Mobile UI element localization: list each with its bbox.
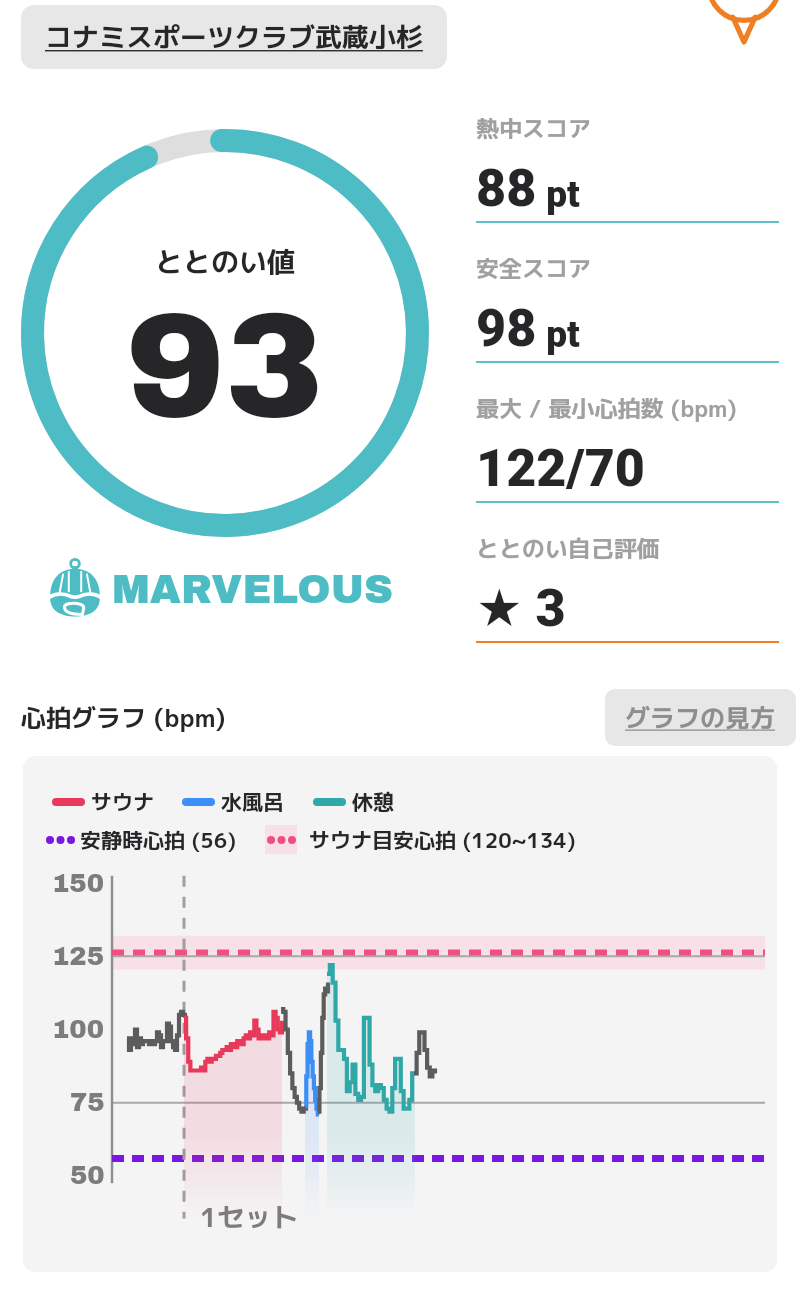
staticText: 98	[476, 298, 537, 359]
staticText: pt	[537, 173, 580, 216]
staticText: 50	[70, 1161, 105, 1189]
staticText: ととのい値	[155, 242, 296, 281]
staticText: 安静時心拍 (56)	[80, 825, 237, 854]
staticText: 93	[126, 286, 324, 447]
button[interactable]: コナミスポーツクラブ武蔵小杉	[21, 5, 447, 69]
staticText: 休憩	[352, 787, 394, 816]
staticText: グラフの見方	[625, 700, 776, 735]
staticText: MARVELOUS	[112, 568, 393, 612]
staticText: 125	[52, 942, 105, 970]
staticText: 1セット	[200, 1198, 299, 1236]
staticText: サウナ	[91, 787, 154, 816]
staticText: 122/70	[476, 438, 645, 499]
staticText: 88	[476, 158, 537, 219]
staticText: 心拍グラフ (bpm)	[21, 700, 226, 735]
button[interactable]: グラフの見方	[605, 689, 796, 746]
staticText: サウナ目安心拍 (120~134)	[309, 825, 576, 854]
staticText: コナミスポーツクラブ武蔵小杉	[45, 18, 423, 56]
staticText: ととのい自己評価	[476, 532, 660, 564]
staticText: 熱中スコア	[476, 112, 591, 144]
button[interactable]: Location	[704, 0, 784, 30]
staticText: 100	[52, 1015, 105, 1043]
staticText: 安全スコア	[476, 252, 591, 284]
staticText: ★ 3	[476, 578, 566, 639]
staticText: 150	[52, 869, 105, 897]
staticText: 75	[70, 1088, 105, 1116]
staticText: 水風呂	[221, 787, 284, 816]
staticText: 最大 / 最小心拍数 (bpm)	[476, 392, 737, 424]
staticText: pt	[537, 313, 580, 356]
